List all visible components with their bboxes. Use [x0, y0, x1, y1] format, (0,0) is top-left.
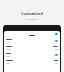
staticText: Full featured	[0, 18, 64, 21]
button[interactable]	[6, 58, 58, 65]
staticText: Customized	[0, 11, 64, 16]
button[interactable]	[6, 44, 58, 51]
button[interactable]: Toggle	[55, 33, 58, 35]
button[interactable]: Toggle	[6, 51, 58, 58]
button[interactable]: Toggle	[6, 37, 58, 44]
button[interactable]: Toggle	[55, 40, 58, 42]
button[interactable]: Toggle	[55, 54, 58, 56]
